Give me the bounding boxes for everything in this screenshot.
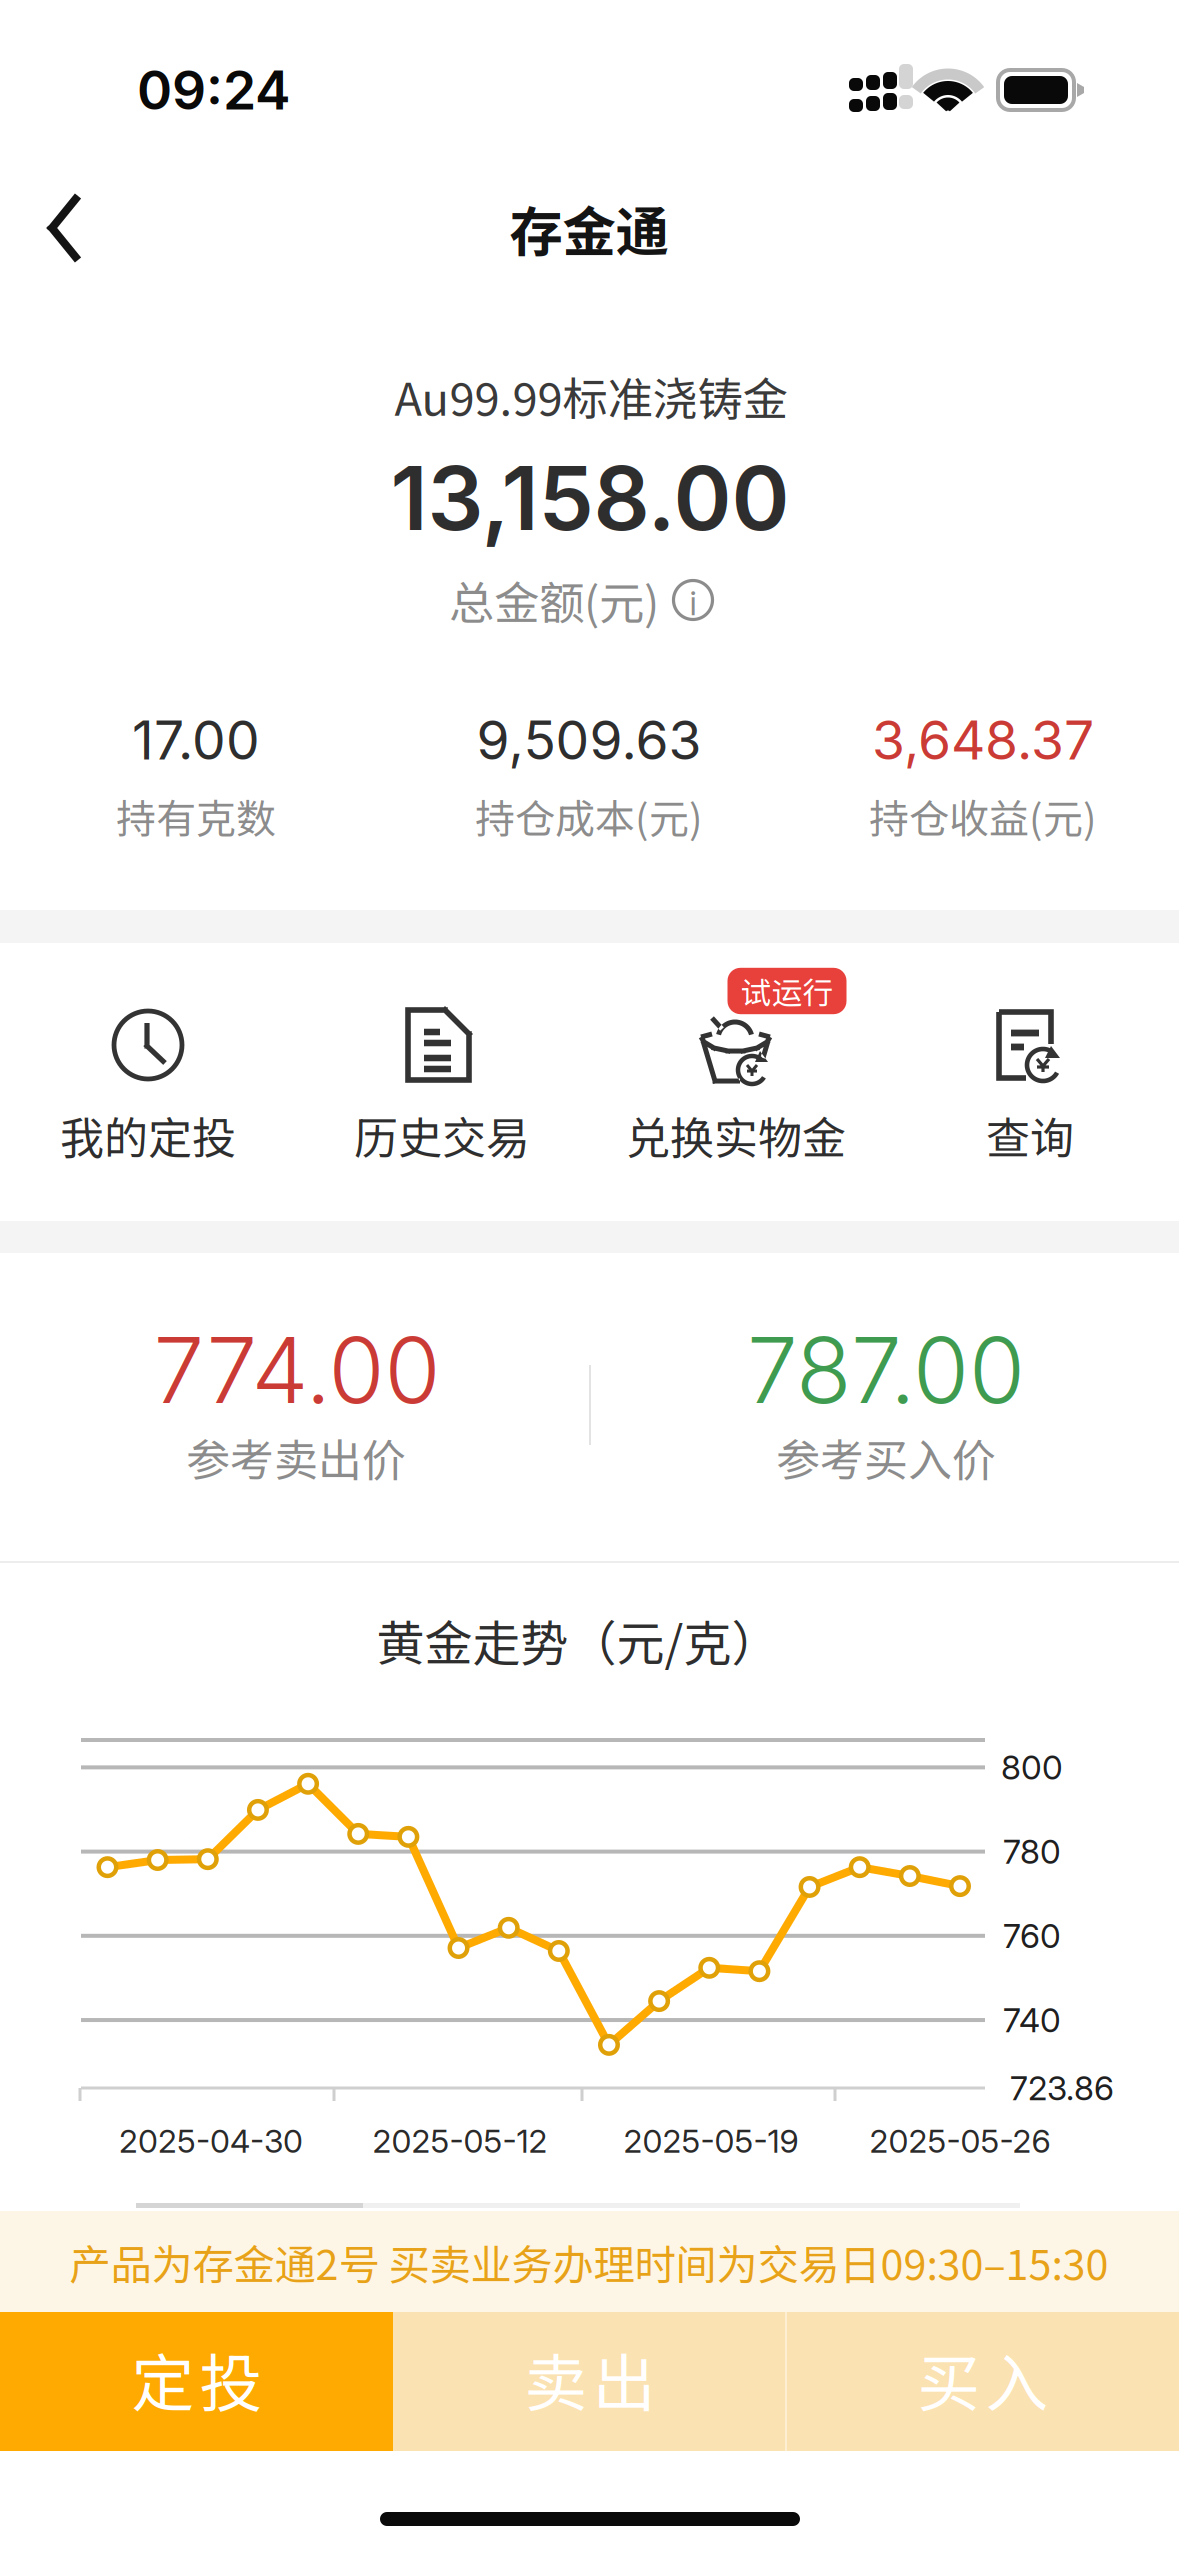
staticText: 历史交易 bbox=[354, 1103, 530, 1167]
staticText: 800 bbox=[1001, 1747, 1063, 1787]
staticText: 2025-05-26 bbox=[869, 2122, 1050, 2160]
staticText: 卖出 bbox=[524, 2334, 655, 2424]
staticText: Au99.99标准浇铸金 bbox=[394, 363, 787, 429]
staticText: 试运行 bbox=[740, 969, 833, 1013]
staticText: 产品为存金通2号 买卖业务办理时间为交易日09:30–15:30 bbox=[69, 2232, 1108, 2292]
staticText: 黄金走势（元/克） bbox=[376, 1605, 779, 1675]
staticText: 2025-05-12 bbox=[372, 2122, 547, 2160]
staticText: 持有克数 bbox=[116, 787, 276, 845]
staticText: 总金额(元) bbox=[449, 567, 659, 633]
staticText: 持仓收益(元) bbox=[869, 787, 1097, 845]
staticText: 2025-05-19 bbox=[623, 2122, 798, 2160]
staticText: 定投 bbox=[131, 2334, 262, 2424]
button[interactable]: 查询 bbox=[0, 0, 1179, 2556]
staticText: 774.00 bbox=[153, 1315, 440, 1425]
staticText: 参考卖出价 bbox=[186, 1425, 406, 1489]
button[interactable]: 定投 bbox=[0, 0, 1179, 2556]
staticText: 17.00 bbox=[132, 708, 260, 772]
staticText: 13,158.00 bbox=[390, 445, 789, 551]
button[interactable]: 卖出 bbox=[0, 0, 1179, 2556]
staticText: 9,509.63 bbox=[476, 708, 701, 772]
staticText: 兑换实物金 bbox=[626, 1103, 846, 1167]
staticText: 我的定投 bbox=[60, 1103, 236, 1167]
staticText: 723.86 bbox=[1010, 2068, 1114, 2108]
staticText: 760 bbox=[1003, 1916, 1061, 1956]
button[interactable]: 试运行 bbox=[0, 0, 1179, 2556]
staticText: i bbox=[689, 583, 696, 623]
staticText: 存金通 bbox=[509, 189, 668, 267]
button[interactable]: 我的定投 bbox=[0, 0, 1179, 2556]
staticText: 持仓成本(元) bbox=[475, 787, 703, 845]
staticText: 780 bbox=[1003, 1831, 1061, 1872]
staticText: 787.00 bbox=[747, 1315, 1025, 1425]
staticText: 查询 bbox=[986, 1103, 1074, 1167]
staticText: 3,648.37 bbox=[872, 708, 1094, 772]
staticText: 买入 bbox=[917, 2334, 1048, 2424]
staticText: 2025-04-30 bbox=[119, 2122, 303, 2160]
staticText: 09:24 bbox=[137, 58, 291, 122]
staticText: 参考买入价 bbox=[776, 1425, 996, 1489]
button[interactable]: Back bbox=[0, 0, 1179, 2556]
button[interactable]: 历史交易 bbox=[0, 0, 1179, 2556]
button[interactable]: 买入 bbox=[0, 0, 1179, 2556]
staticText: 740 bbox=[1003, 2000, 1061, 2040]
